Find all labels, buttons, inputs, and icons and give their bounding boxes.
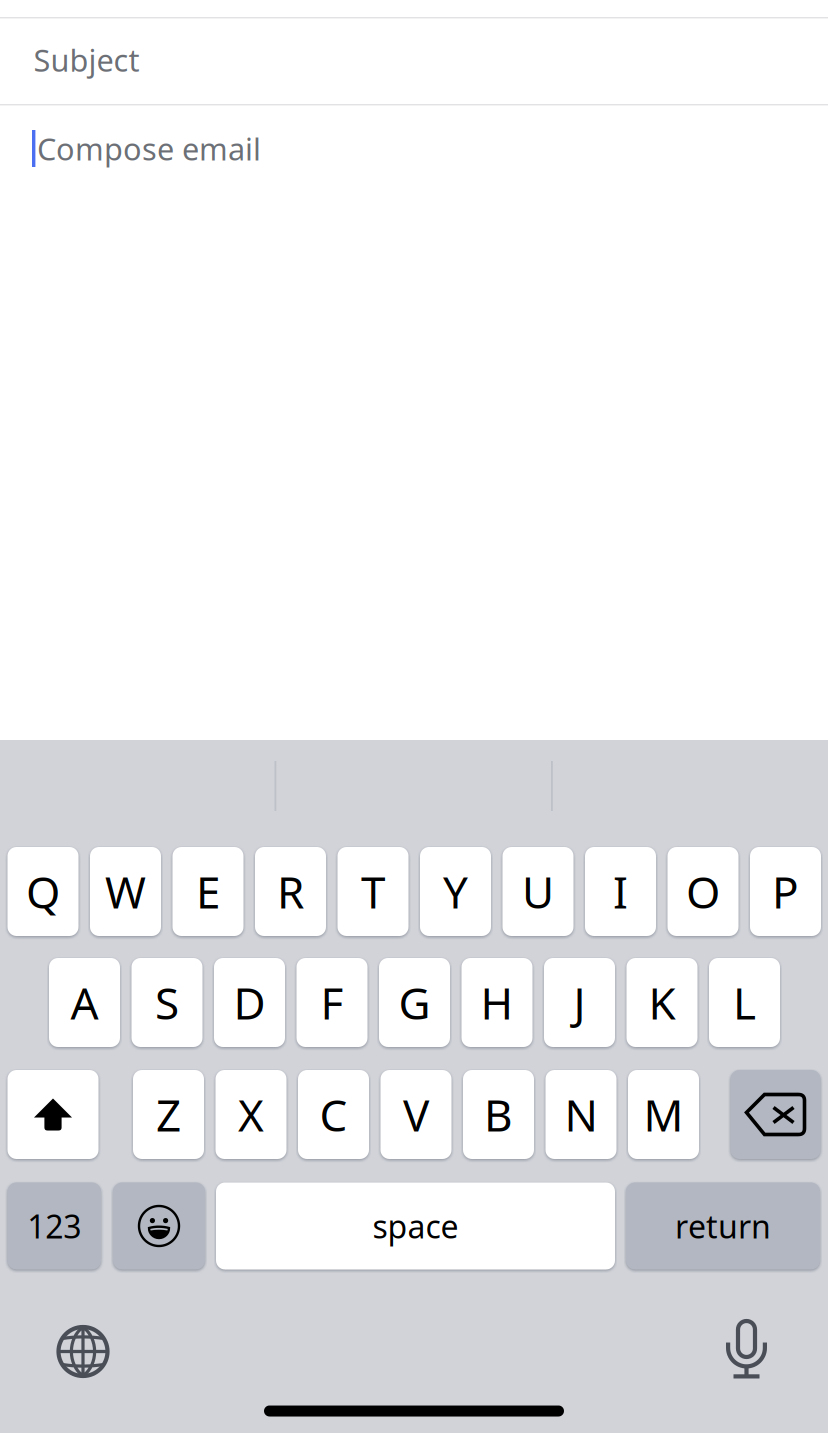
- button[interactable]: return: [626, 1182, 820, 1269]
- staticText: J: [573, 973, 585, 1032]
- staticText: M: [643, 1085, 683, 1144]
- button[interactable]: F: [296, 958, 367, 1047]
- button[interactable]: Next keyboard: [53, 1321, 113, 1381]
- button[interactable]: Y: [420, 847, 491, 936]
- staticText: space: [372, 1205, 458, 1247]
- button[interactable]: L: [709, 958, 780, 1047]
- button[interactable]: C: [298, 1070, 369, 1159]
- staticText: E: [196, 862, 220, 921]
- button[interactable]: Q: [7, 847, 78, 936]
- button[interactable]: B: [463, 1070, 534, 1159]
- staticText: S: [155, 973, 179, 1032]
- button[interactable]: V: [380, 1070, 451, 1159]
- staticText: K: [648, 973, 675, 1032]
- button[interactable]: X: [215, 1070, 286, 1159]
- button[interactable]: G: [379, 958, 450, 1047]
- staticText: V: [403, 1085, 429, 1144]
- staticText: 123: [27, 1205, 81, 1247]
- staticText: C: [319, 1085, 347, 1144]
- staticText: Compose email: [37, 128, 261, 169]
- staticText: H: [480, 973, 513, 1032]
- staticText: O: [686, 862, 720, 921]
- button[interactable]: D: [214, 958, 285, 1047]
- staticText: I: [613, 862, 628, 921]
- staticText: Y: [443, 862, 468, 921]
- button[interactable]: Subject: [33, 25, 333, 95]
- button[interactable]: J: [544, 958, 615, 1047]
- staticText: Q: [26, 862, 60, 921]
- button[interactable]: Compose email: [37, 113, 437, 183]
- button[interactable]: M: [628, 1070, 699, 1159]
- button[interactable]: I: [585, 847, 656, 936]
- button[interactable]: Z: [133, 1070, 204, 1159]
- button[interactable]: Shift: [7, 1070, 98, 1159]
- staticText: W: [105, 862, 146, 921]
- button[interactable]: space: [216, 1182, 615, 1269]
- staticText: R: [277, 862, 304, 921]
- button[interactable]: K: [626, 958, 697, 1047]
- button[interactable]: T: [337, 847, 408, 936]
- staticText: return: [675, 1205, 771, 1247]
- button[interactable]: E: [172, 847, 243, 936]
- button[interactable]: Emoji: [113, 1182, 205, 1269]
- button[interactable]: S: [131, 958, 202, 1047]
- button[interactable]: O: [667, 847, 738, 936]
- button[interactable]: N: [545, 1070, 616, 1159]
- staticText: P: [772, 862, 799, 921]
- button[interactable]: 123: [7, 1182, 101, 1269]
- button[interactable]: Delete: [730, 1070, 820, 1159]
- button[interactable]: W: [90, 847, 161, 936]
- staticText: D: [233, 973, 265, 1032]
- staticText: L: [733, 973, 756, 1032]
- button[interactable]: A: [49, 958, 120, 1047]
- button[interactable]: Dictation: [716, 1318, 776, 1380]
- button[interactable]: U: [502, 847, 573, 936]
- button[interactable]: H: [461, 958, 532, 1047]
- button[interactable]: R: [255, 847, 326, 936]
- button[interactable]: P: [750, 847, 821, 936]
- staticText: T: [361, 862, 385, 921]
- staticText: B: [484, 1085, 513, 1144]
- staticText: G: [398, 973, 430, 1032]
- staticText: U: [522, 862, 554, 921]
- staticText: Z: [156, 1085, 181, 1144]
- staticText: X: [238, 1085, 264, 1144]
- staticText: A: [70, 973, 98, 1032]
- staticText: Subject: [33, 39, 139, 80]
- staticText: F: [320, 973, 343, 1032]
- staticText: N: [564, 1085, 597, 1144]
